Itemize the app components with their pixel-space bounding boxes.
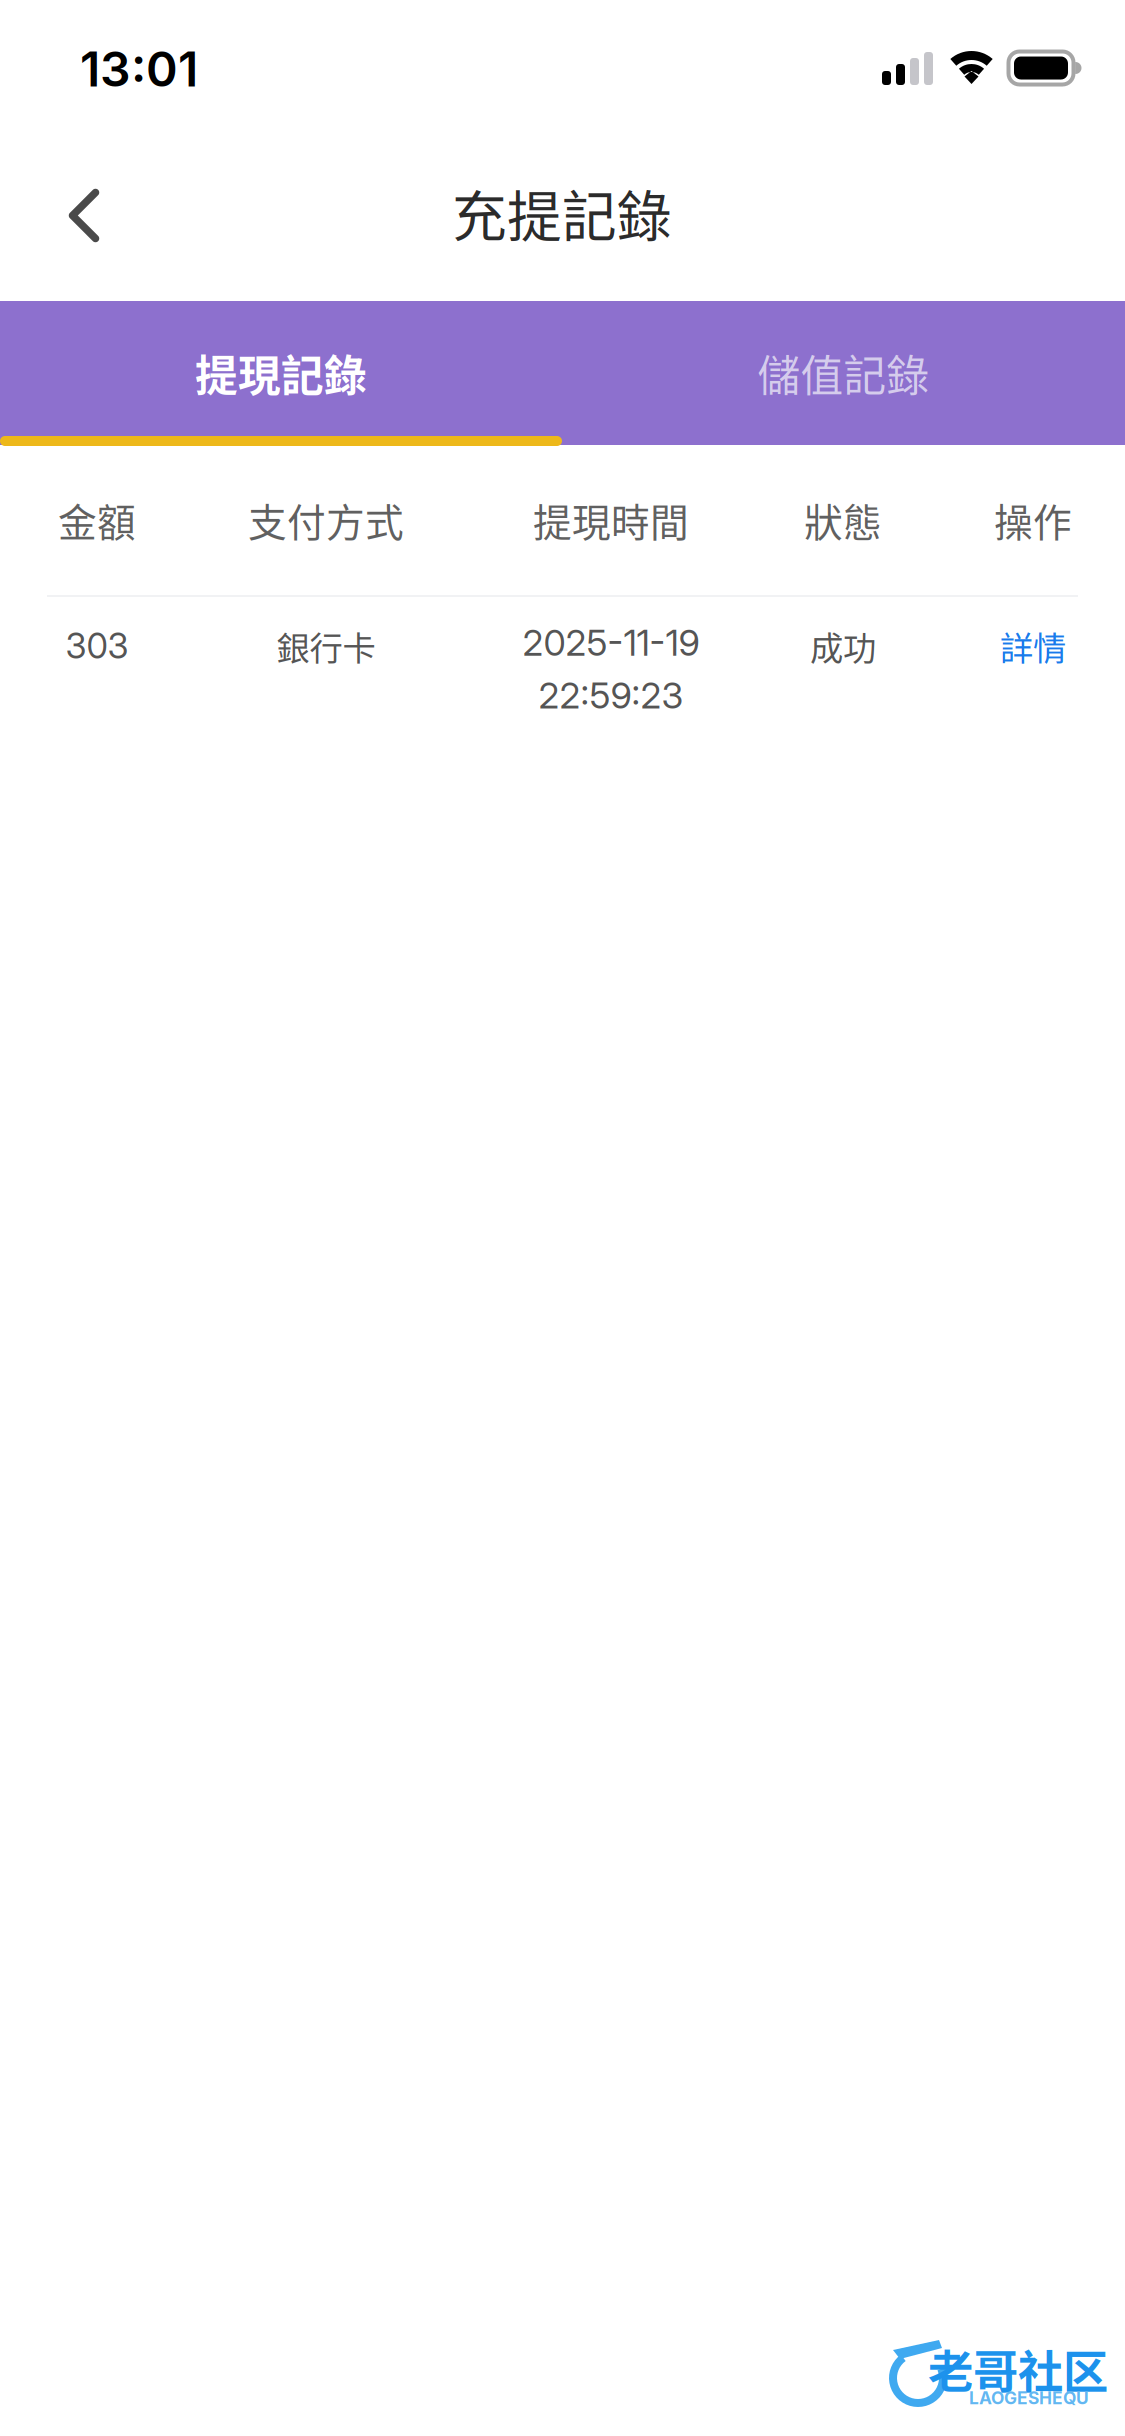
staticText: 詳情 bbox=[1000, 622, 1066, 670]
button[interactable]: 提現記錄 bbox=[0, 301, 562, 445]
button[interactable]: Back bbox=[4, 135, 164, 296]
staticText: 儲值記錄 bbox=[757, 342, 929, 404]
staticText: 充提記錄 bbox=[452, 173, 672, 252]
staticText: 金額 bbox=[58, 492, 136, 548]
staticText: 13:01 bbox=[80, 40, 198, 98]
staticText: 303 bbox=[65, 625, 128, 667]
button[interactable]: 詳情 bbox=[948, 586, 1118, 706]
button[interactable]: 儲值記錄 bbox=[562, 301, 1125, 445]
staticText: 22:59:23 bbox=[538, 673, 683, 717]
staticText: LAOGESHEQU bbox=[969, 2387, 1089, 2408]
staticText: 提現時間 bbox=[533, 492, 689, 548]
staticText: 成功 bbox=[810, 622, 876, 670]
staticText: 老哥社区 bbox=[928, 2336, 1108, 2402]
staticText: 支付方式 bbox=[248, 492, 404, 548]
staticText: 狀態 bbox=[804, 492, 882, 548]
staticText: 銀行卡 bbox=[276, 622, 375, 670]
staticText: 2025-11-19 bbox=[522, 621, 699, 664]
staticText: 操作 bbox=[994, 492, 1072, 548]
staticText: 提現記錄 bbox=[195, 342, 367, 404]
